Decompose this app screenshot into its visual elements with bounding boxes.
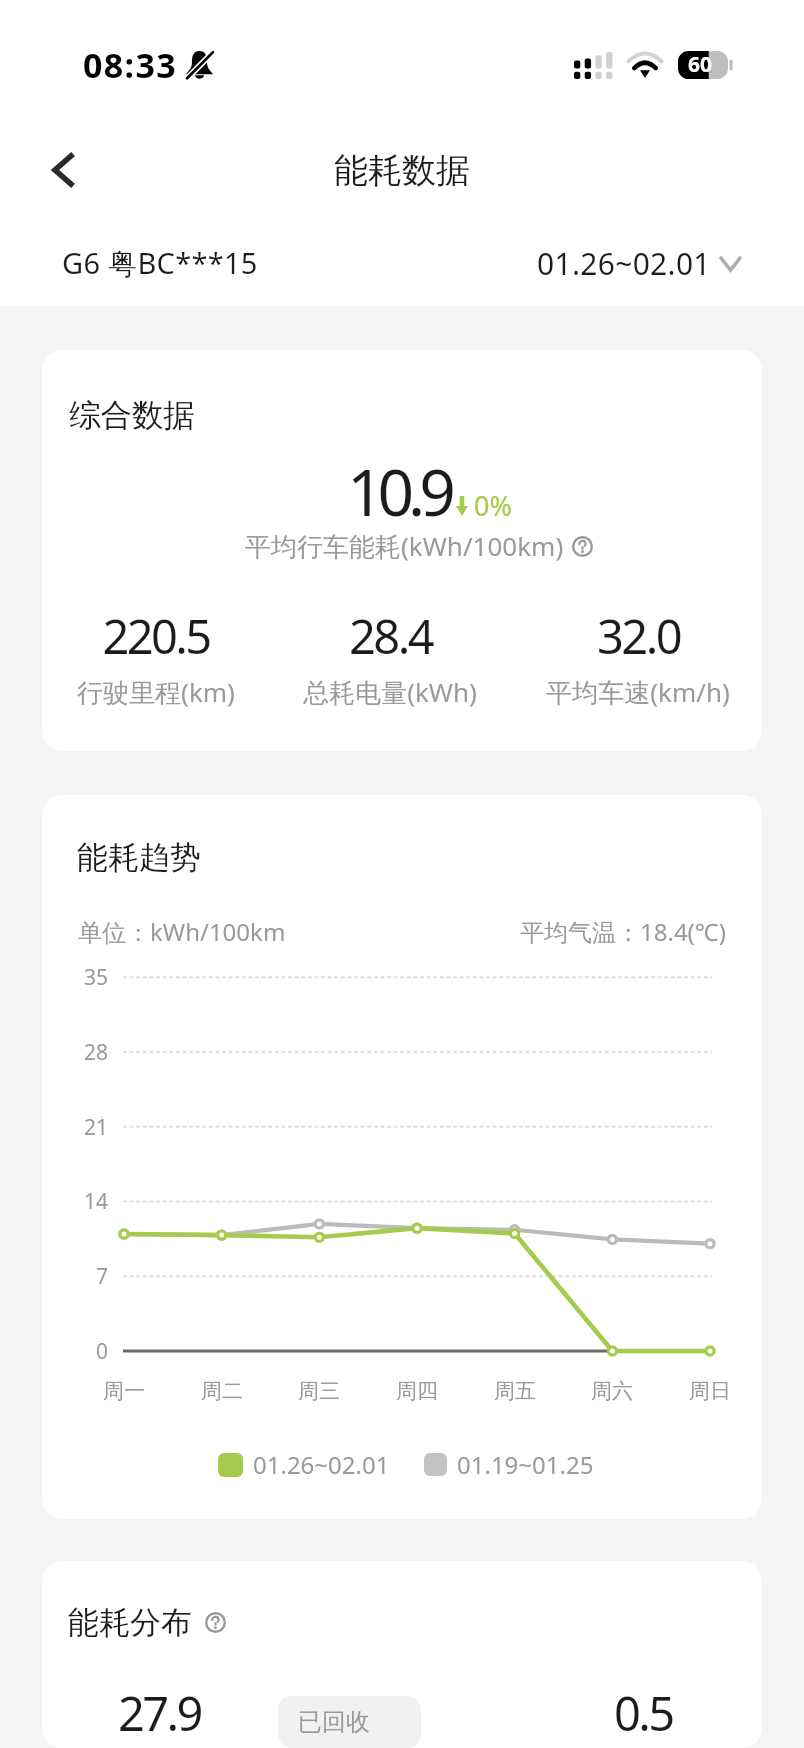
staticText: 220.5 [102,604,210,668]
staticText: 7 [68,1262,108,1291]
staticText: 单位：kWh/100km [78,915,286,948]
staticText: 0% [474,487,512,524]
staticText: 周四 [382,1378,452,1404]
staticText: 能耗趋势 [77,838,201,877]
staticText: 28.4 [349,604,432,668]
staticText: 周二 [187,1378,257,1404]
staticText: 总耗电量(kWh) [303,674,477,710]
staticText: 0 [68,1337,108,1366]
staticText: 01.19~01.25 [457,1448,594,1481]
staticText: 01.26~02.01 [537,243,711,284]
staticText: 32.0 [597,604,680,668]
staticText: 0.5 [614,1681,673,1745]
staticText: 周一 [89,1378,159,1404]
staticText: 周三 [284,1378,354,1404]
staticText: 周日 [675,1378,745,1404]
staticText: 周六 [577,1378,647,1404]
staticText: 平均行车能耗(kWh/100km) [245,528,564,564]
staticText: 综合数据 [69,396,195,436]
staticText: 能耗分布 [68,1603,192,1642]
staticText: 能耗数据 [334,149,470,192]
button[interactable]: 已回收 [298,1707,370,1737]
staticText: 08:33 [83,42,178,88]
staticText: 28 [68,1038,108,1067]
button[interactable]: Back [33,140,93,200]
staticText: 27.9 [118,1681,201,1745]
staticText: 行驶里程(km) [77,674,235,710]
staticText: 平均车速(km/h) [546,674,730,710]
staticText: 14 [68,1187,108,1216]
staticText: 60 [688,50,713,78]
staticText: 35 [68,963,108,992]
staticText: G6 粤BC***15 [62,243,258,283]
staticText: 21 [68,1113,108,1142]
button[interactable]: 01.26~02.01 [537,243,740,284]
staticText: 01.26~02.01 [253,1448,390,1481]
staticText: 10.9 [347,448,450,535]
staticText: 平均气温：18.4(℃) [520,915,726,948]
staticText: 周五 [480,1378,550,1404]
